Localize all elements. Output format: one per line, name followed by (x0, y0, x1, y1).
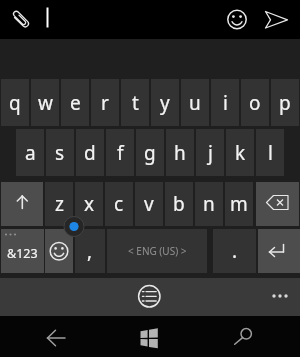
button[interactable] (130, 322, 170, 354)
button[interactable]: i (211, 79, 239, 126)
staticText: y (160, 90, 170, 116)
staticText: . (232, 238, 238, 264)
button[interactable]: z (45, 182, 73, 226)
button[interactable] (1, 182, 43, 226)
button[interactable]: q (1, 79, 29, 126)
button[interactable]: l (256, 129, 284, 176)
button[interactable] (0, 0, 300, 39)
staticText: v (144, 191, 154, 217)
staticText: s (55, 140, 65, 166)
staticText: w (38, 90, 53, 116)
button[interactable]: < ENG (US) > (107, 229, 207, 273)
button[interactable]: x (75, 182, 103, 226)
button[interactable] (256, 182, 299, 226)
button[interactable]: r (91, 79, 119, 126)
button[interactable]: w (31, 79, 59, 126)
staticText: e (70, 90, 81, 116)
button[interactable] (45, 229, 73, 273)
staticText: j (208, 140, 213, 166)
button[interactable]: o (241, 79, 269, 126)
staticText: l (268, 140, 273, 166)
staticText: o (249, 90, 261, 116)
button[interactable]: u (181, 79, 209, 126)
staticText: r (101, 90, 109, 116)
staticText: g (144, 140, 156, 166)
staticText: n (203, 191, 215, 217)
button[interactable]: m (225, 182, 253, 226)
staticText: x (84, 191, 95, 217)
button[interactable]: g (136, 129, 164, 176)
staticText: u (189, 90, 201, 116)
staticText: d (84, 140, 96, 166)
button[interactable]: d (76, 129, 104, 176)
staticText: p (279, 90, 291, 116)
button[interactable] (135, 282, 165, 312)
button[interactable]: t (121, 79, 149, 126)
button[interactable]: v (135, 182, 163, 226)
button[interactable] (258, 229, 300, 273)
button[interactable] (265, 284, 295, 308)
button[interactable]: h (166, 129, 194, 176)
staticText: a (25, 140, 36, 166)
staticText: m (230, 191, 248, 217)
button[interactable]: j (196, 129, 224, 176)
staticText: z (55, 191, 64, 217)
staticText: h (174, 140, 186, 166)
button[interactable]: k (226, 129, 254, 176)
staticText: b (173, 191, 185, 217)
button[interactable]: c (105, 182, 133, 226)
button[interactable]: a (16, 129, 44, 176)
button[interactable]: p (271, 79, 299, 126)
button[interactable]: &123 (1, 229, 44, 273)
staticText: &123 (7, 245, 38, 262)
button[interactable]: . (213, 229, 256, 273)
button[interactable]: e (61, 79, 89, 126)
staticText: f (117, 140, 124, 166)
staticText: k (235, 140, 246, 166)
button[interactable] (0, 278, 300, 316)
button[interactable]: n (195, 182, 223, 226)
staticText: , (87, 238, 93, 264)
button[interactable]: y (151, 79, 179, 126)
button[interactable]: s (46, 129, 74, 176)
button[interactable] (226, 322, 266, 354)
button[interactable]: , (75, 229, 105, 273)
button[interactable] (36, 322, 76, 354)
staticText: t (132, 90, 139, 116)
staticText: c (114, 191, 124, 217)
staticText: i (223, 90, 228, 116)
button[interactable]: f (106, 129, 134, 176)
staticText: q (9, 90, 21, 116)
button[interactable]: b (165, 182, 193, 226)
staticText: < ENG (US) > (128, 244, 187, 258)
